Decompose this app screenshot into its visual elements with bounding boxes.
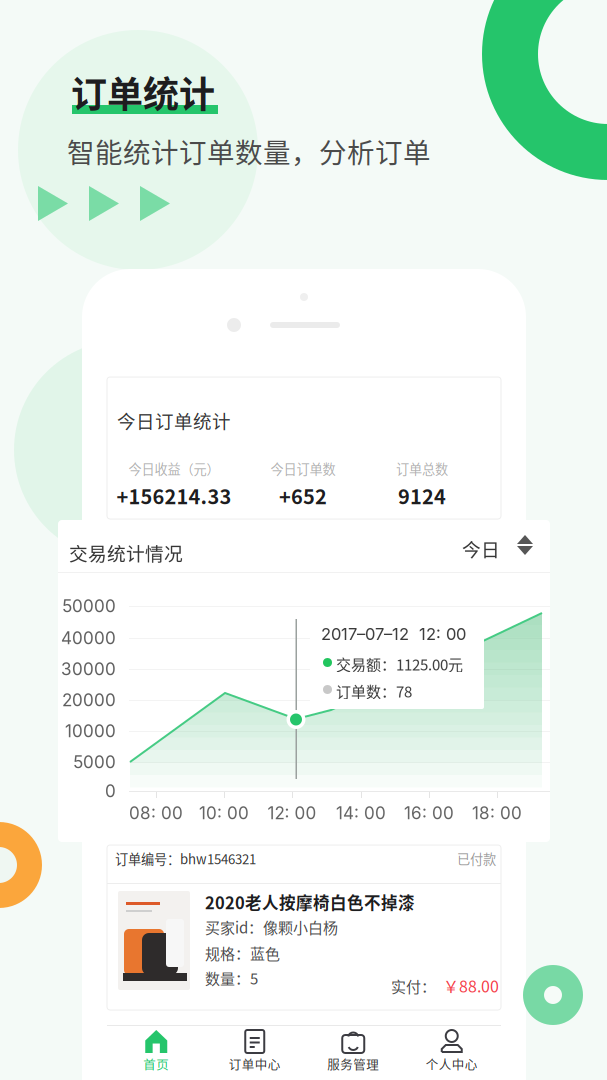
staticText: 订单统计 — [71, 66, 215, 118]
staticText: ￥88.00 — [443, 974, 499, 997]
staticText: 16: 00 — [404, 803, 454, 823]
staticText: 12: 00 — [267, 803, 316, 823]
staticText: 0 — [105, 781, 116, 801]
staticText: 2020老人按摩椅白色不掉漆 — [205, 890, 415, 914]
staticText: 交易额：1125.00元 — [336, 653, 463, 675]
staticText: +652 — [279, 481, 327, 510]
staticText: +156214.33 — [116, 481, 231, 510]
staticText: 2017–07–12 12: 00 — [321, 624, 466, 644]
staticText: 18: 00 — [472, 803, 522, 823]
staticText: 08: 00 — [129, 803, 183, 823]
staticText: 9124 — [398, 481, 446, 510]
staticText: 服务管理 — [327, 1055, 379, 1073]
staticText: 数量：5 — [205, 967, 258, 989]
staticText: 30000 — [61, 659, 116, 679]
staticText: 交易统计情况 — [69, 539, 183, 566]
staticText: 订单数：78 — [336, 680, 412, 702]
staticText: 5000 — [73, 752, 116, 772]
button[interactable]: 服务管理 — [304, 1025, 402, 1080]
staticText: 14: 00 — [336, 803, 386, 823]
button[interactable]: 订单中心 — [205, 1025, 304, 1080]
staticText: 10: 00 — [199, 803, 249, 823]
staticText: 已付款 — [457, 849, 496, 868]
staticText: 50000 — [62, 596, 116, 616]
button[interactable]: 首页 — [107, 1025, 205, 1080]
staticText: 今日收益（元） — [128, 459, 219, 478]
button[interactable]: 个人中心 — [402, 1025, 501, 1080]
staticText: 今日 — [462, 535, 500, 562]
staticText: 订单中心 — [229, 1055, 281, 1073]
staticText: 40000 — [61, 628, 116, 648]
staticText: 20000 — [62, 690, 116, 710]
staticText: 买家id：像颗小白杨 — [205, 916, 338, 938]
staticText: 订单总数 — [396, 459, 448, 478]
staticText: 今日订单数 — [270, 459, 335, 478]
staticText: 今日订单统计 — [117, 407, 231, 434]
staticText: 个人中心 — [426, 1055, 478, 1073]
staticText: 10000 — [65, 721, 116, 741]
staticText: 首页 — [143, 1055, 169, 1073]
button[interactable]: 今日 — [462, 534, 540, 562]
staticText: 实付： — [391, 975, 436, 997]
staticText: 智能统计订单数量，分析订单 — [67, 131, 431, 171]
staticText: 规格：蓝色 — [205, 942, 280, 964]
staticText: 订单编号：bhw1546321 — [115, 849, 256, 868]
